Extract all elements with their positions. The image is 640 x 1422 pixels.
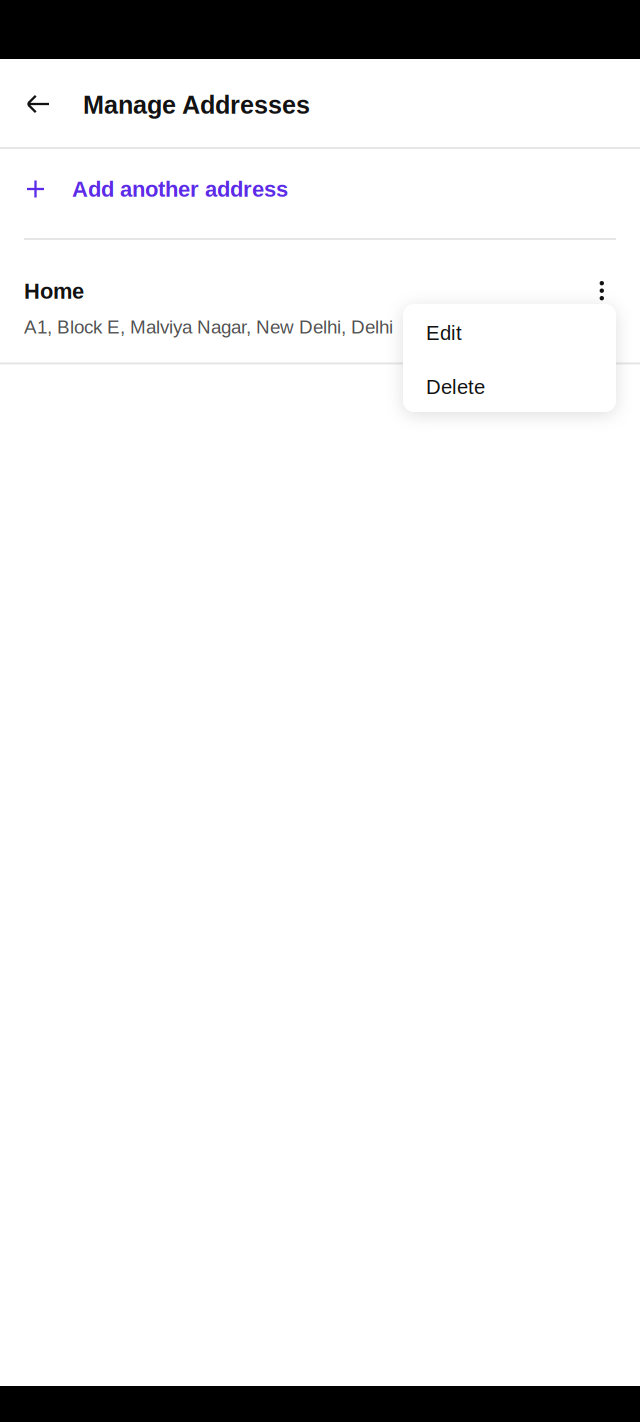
staticText: Add another address bbox=[72, 177, 288, 201]
button[interactable]: Delete bbox=[403, 358, 616, 412]
staticText: Manage Addresses bbox=[83, 91, 310, 119]
staticText: Edit bbox=[426, 322, 462, 344]
staticText: Home bbox=[24, 279, 84, 303]
button[interactable]: Add another address bbox=[0, 149, 640, 238]
staticText: Delete bbox=[426, 376, 485, 398]
button[interactable]: Back bbox=[11, 58, 65, 147]
button[interactable]: Home bbox=[0, 240, 640, 362]
button[interactable]: Edit bbox=[403, 304, 616, 358]
staticText: A1, Block E, Malviya Nagar, New Delhi, D… bbox=[24, 316, 393, 337]
